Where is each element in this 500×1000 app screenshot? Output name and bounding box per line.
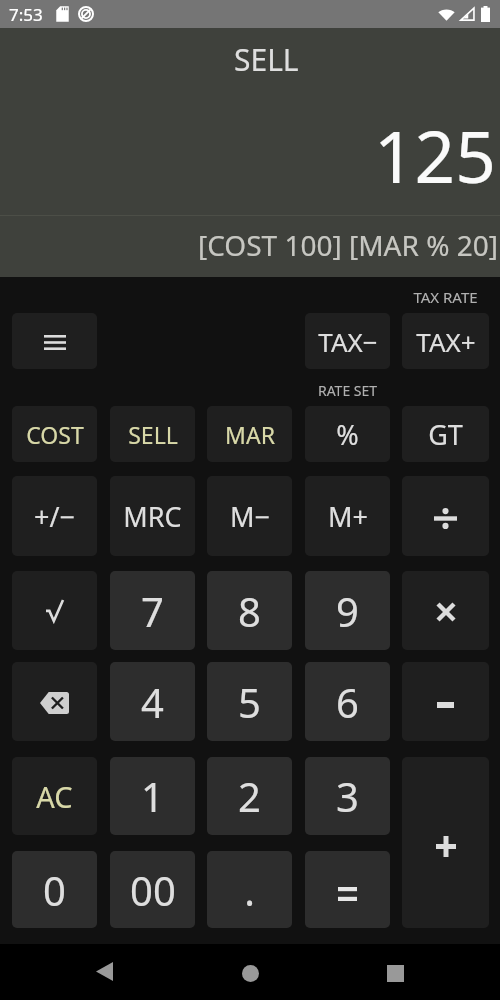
button[interactable]: GT (402, 406, 489, 462)
staticText: M− (230, 498, 270, 535)
staticText: M+ (328, 498, 368, 535)
button[interactable]: +/− (12, 476, 97, 556)
button[interactable]: Home (224, 946, 276, 998)
button[interactable]: COST (12, 406, 97, 462)
button[interactable]: 6 (305, 662, 390, 741)
button[interactable]: 8 (207, 571, 292, 650)
staticText: 1 (141, 769, 164, 823)
button[interactable]: TAX+ (402, 313, 489, 369)
staticText: TAX− (318, 324, 378, 359)
staticText: 8 (238, 584, 261, 638)
staticText: [COST 100] [MAR % 20] (198, 226, 498, 264)
staticText: 2 (238, 769, 261, 823)
staticText: +/− (34, 498, 75, 535)
button[interactable]: M− (207, 476, 292, 556)
button[interactable]: AC (12, 757, 97, 835)
button[interactable]: SELL (110, 406, 195, 462)
staticText: TAX RATE (402, 287, 489, 307)
button[interactable]: Backspace (12, 662, 97, 741)
staticText: 7 (141, 584, 164, 638)
button[interactable]: M+ (305, 476, 390, 556)
button[interactable]: 0 (12, 851, 97, 928)
staticText: RATE SET (305, 381, 390, 400)
button[interactable]: . (207, 851, 292, 928)
button[interactable]: Menu (12, 313, 97, 369)
button[interactable]: Equals (305, 851, 390, 928)
staticText: % (336, 416, 359, 453)
button[interactable]: 5 (207, 662, 292, 741)
button[interactable]: 1 (110, 757, 195, 835)
button[interactable]: Recent apps (369, 945, 421, 997)
button[interactable]: Multiply (402, 571, 489, 650)
staticText: MAR (225, 419, 275, 450)
staticText: 0 (43, 863, 66, 917)
button[interactable]: Add (402, 757, 489, 928)
button[interactable]: Square root (12, 571, 97, 650)
button[interactable]: TAX− (305, 313, 390, 369)
button[interactable]: Subtract (402, 662, 489, 741)
staticText: MRC (123, 498, 182, 535)
staticText: 125 (374, 107, 496, 204)
staticText: SELL (234, 39, 299, 80)
staticText: 5 (238, 675, 261, 729)
button[interactable]: Back (78, 945, 130, 997)
staticText: 7:53 (9, 3, 43, 26)
staticText: 4 (141, 675, 164, 729)
staticText: GT (428, 416, 463, 453)
button[interactable]: 3 (305, 757, 390, 835)
staticText: TAX+ (416, 324, 476, 359)
button[interactable]: MRC (110, 476, 195, 556)
staticText: 6 (336, 675, 359, 729)
staticText: 9 (336, 584, 359, 638)
button[interactable]: 7 (110, 571, 195, 650)
staticText: SELL (128, 419, 178, 450)
button[interactable]: 4 (110, 662, 195, 741)
button[interactable]: 9 (305, 571, 390, 650)
button[interactable]: % (305, 406, 390, 462)
staticText: . (244, 863, 255, 917)
staticText: 00 (130, 863, 176, 917)
button[interactable]: 00 (110, 851, 195, 928)
staticText: 3 (336, 769, 359, 823)
button[interactable]: 2 (207, 757, 292, 835)
staticText: COST (26, 419, 84, 450)
staticText: AC (36, 777, 73, 816)
button[interactable]: Divide (402, 476, 489, 556)
button[interactable]: MAR (207, 406, 292, 462)
